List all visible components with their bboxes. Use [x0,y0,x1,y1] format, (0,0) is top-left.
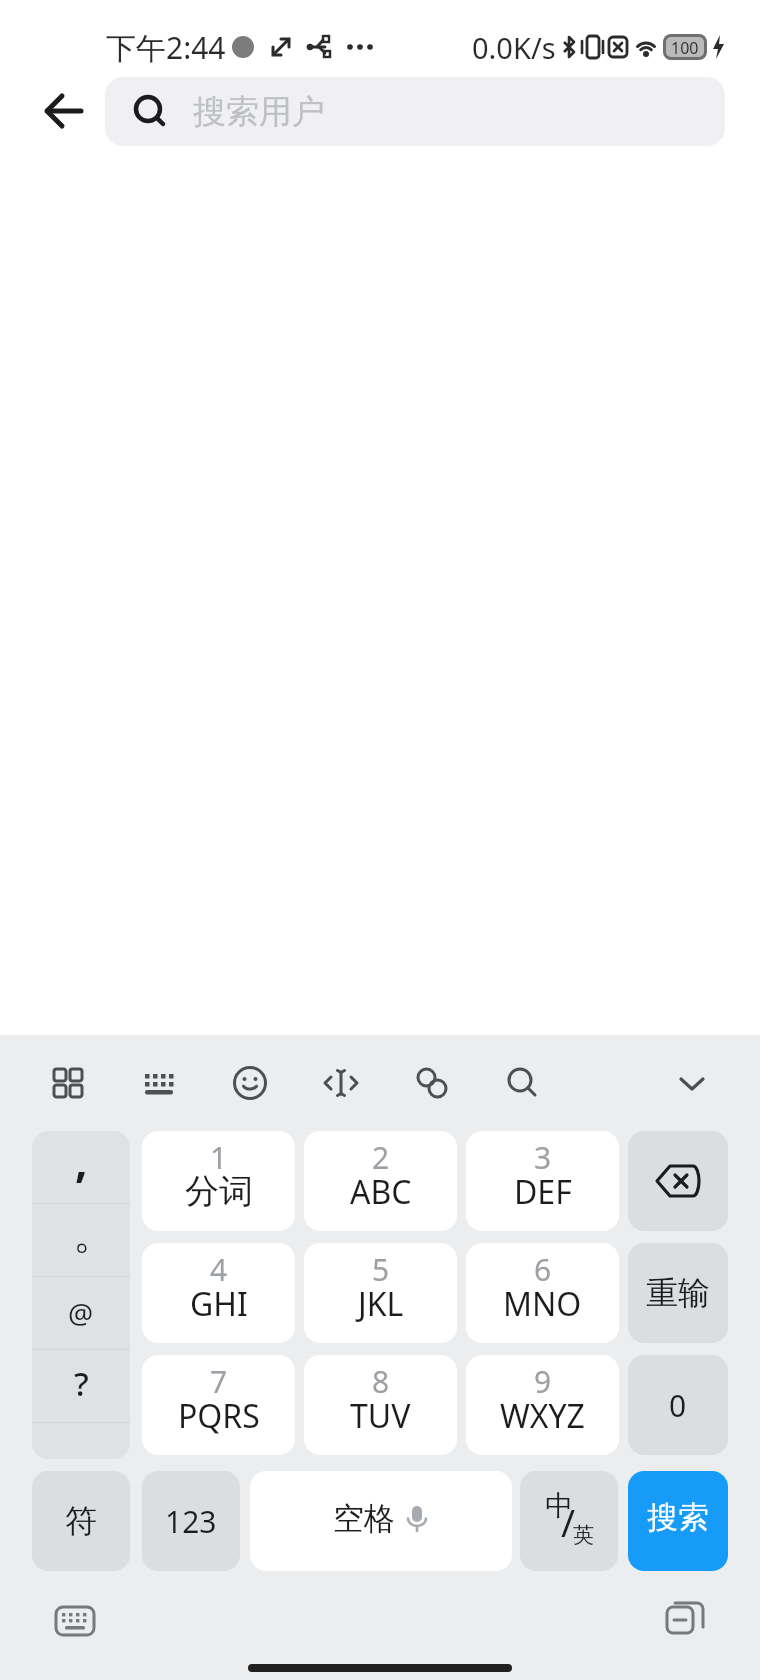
button[interactable]: 5 [304,1243,457,1343]
button[interactable] [501,1061,545,1105]
staticText: , [75,1131,88,1190]
staticText: 7 [210,1361,228,1402]
staticText: 123 [165,1501,217,1542]
button[interactable]: 6 [466,1243,619,1343]
staticText: WXYZ [500,1394,585,1438]
button[interactable]: 2 [304,1131,457,1231]
staticText: 8 [372,1361,390,1402]
button[interactable]: , [32,1131,130,1203]
staticText: @ [68,1294,94,1332]
button[interactable]: 符 [32,1471,130,1571]
button[interactable] [137,1061,181,1105]
staticText: 英 [573,1522,594,1548]
button[interactable]: 搜索用户 [105,77,725,146]
button[interactable]: 4 [142,1243,295,1343]
staticText: 3 [534,1137,552,1178]
button[interactable]: 重输 [628,1243,728,1343]
button[interactable]: 9 [466,1355,619,1455]
button[interactable] [663,1597,707,1641]
button[interactable]: 搜索 [628,1471,728,1571]
button[interactable] [0,70,105,152]
button[interactable] [46,1061,90,1105]
button[interactable] [228,1061,272,1105]
staticText: 5 [372,1249,390,1290]
staticText: 。 [73,1208,115,1261]
button[interactable] [410,1061,454,1105]
staticText: PQRS [178,1394,260,1438]
staticText: 重输 [646,1273,710,1313]
button[interactable]: 123 [142,1471,240,1571]
staticText: 分词 [185,1170,253,1213]
staticText: 搜索 [647,1498,709,1537]
staticText: 9 [534,1361,552,1402]
staticText: 空格 [333,1499,395,1538]
button[interactable]: ? [32,1350,130,1422]
button[interactable] [670,1061,714,1105]
staticText: ? [74,1361,89,1406]
button[interactable]: 3 [466,1131,619,1231]
staticText: ABC [350,1170,412,1214]
staticText: 中 [545,1488,573,1523]
button[interactable] [53,1599,97,1643]
staticText: DEF [514,1170,572,1214]
staticText: TUV [350,1394,411,1438]
staticText: 符 [65,1501,97,1541]
staticText: 1 [210,1137,228,1178]
staticText: / [561,1496,576,1548]
button[interactable]: 。 [32,1204,130,1276]
staticText: 4 [210,1249,228,1290]
staticText: 100 [671,37,699,57]
button[interactable] [628,1131,728,1231]
staticText: 下午2:44 [106,27,226,68]
button[interactable]: @ [32,1277,130,1349]
staticText: 搜索用户 [193,91,325,133]
staticText: 2 [372,1137,390,1178]
staticText: JKL [358,1282,404,1326]
staticText: MNO [503,1282,582,1326]
staticText: 6 [534,1249,552,1290]
button[interactable] [319,1061,363,1105]
staticText: 0 [669,1385,687,1426]
button[interactable]: 1 [142,1131,295,1231]
button[interactable]: 7 [142,1355,295,1455]
button[interactable]: 8 [304,1355,457,1455]
staticText: GHI [190,1282,248,1326]
staticText: 0.0K/s [472,28,556,67]
button[interactable]: 中 [520,1471,618,1571]
button[interactable]: 空格 [250,1471,512,1571]
button[interactable]: 0 [628,1355,728,1455]
